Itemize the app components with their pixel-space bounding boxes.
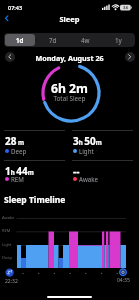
staticText: --	[73, 164, 80, 178]
staticText: Light	[79, 147, 94, 155]
button[interactable]: 1d	[5, 34, 35, 46]
button[interactable]: 7d	[37, 34, 68, 46]
button[interactable]	[1, 12, 13, 24]
staticText: Sleep Timeline	[4, 194, 66, 206]
staticText: Deep	[2, 255, 12, 260]
staticText: 6h 2m	[0, 80, 139, 97]
staticText: 04:35	[117, 277, 130, 284]
staticText: Deep	[11, 147, 27, 155]
staticText: 07:43	[8, 4, 23, 11]
staticText: 1y	[115, 36, 122, 44]
staticText: 22:32	[5, 278, 18, 285]
staticText: REM	[2, 228, 11, 233]
button[interactable]	[5, 52, 15, 62]
staticText: Monday, August 26	[0, 53, 139, 63]
staticText: Light	[2, 242, 12, 247]
staticText: 34	[123, 5, 128, 11]
staticText: Total Sleep	[0, 94, 139, 103]
staticText: Awake	[79, 175, 99, 183]
button[interactable]: 4w	[70, 34, 101, 46]
staticText: Sleep	[0, 14, 139, 24]
staticText: 1d	[16, 36, 24, 44]
staticText: 28 m	[5, 134, 25, 148]
staticText: 1h 44m	[5, 164, 34, 178]
staticText: Awake	[2, 215, 15, 220]
staticText: 4w	[81, 36, 90, 44]
staticText: REM	[11, 175, 24, 183]
staticText: 7d	[49, 36, 57, 44]
button[interactable]	[125, 52, 135, 62]
button[interactable]: 1y	[103, 34, 134, 46]
staticText: 3h 50m	[73, 134, 102, 148]
